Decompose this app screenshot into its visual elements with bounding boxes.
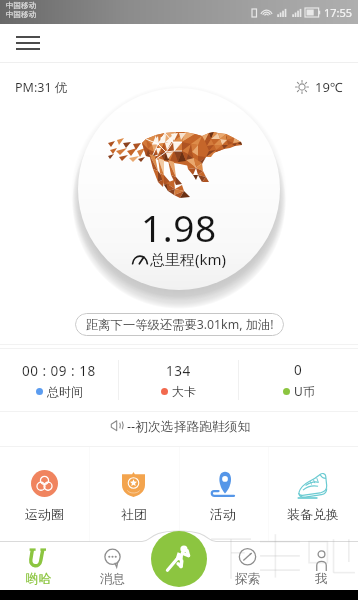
button[interactable]: 00 : 09 : 18 — [0, 349, 118, 411]
staticText: 社团 — [121, 506, 147, 522]
staticText: 1.98 — [141, 202, 217, 252]
staticText: 哟哈 — [26, 571, 51, 587]
button[interactable]: 装备兑换 — [268, 447, 358, 541]
button[interactable]: 134 — [119, 349, 238, 411]
staticText: 中国移动 — [6, 10, 36, 19]
staticText: 运动圈 — [25, 506, 64, 522]
button[interactable]: Start run — [151, 531, 207, 587]
staticText: 我 — [315, 571, 328, 587]
staticText: 00 : 09 : 18 — [22, 362, 96, 380]
button[interactable]: 探索 — [213, 542, 281, 590]
staticText: 总时间 — [47, 384, 83, 399]
button[interactable]: 距离下一等级还需要3.01km, 加油! — [75, 313, 284, 336]
button[interactable]: 消息 — [78, 542, 146, 590]
staticText: U币 — [294, 383, 315, 399]
button[interactable]: 社团 — [89, 447, 178, 541]
staticText: 大卡 — [172, 384, 196, 399]
staticText: 134 — [166, 362, 191, 380]
staticText: --初次选择路跑鞋须知 — [127, 417, 251, 434]
button[interactable]: Menu — [10, 29, 46, 57]
button[interactable]: 活动 — [178, 447, 268, 541]
staticText: 总里程(km) — [150, 249, 227, 269]
staticText: 距离下一等级还需要3.01km, 加油! — [86, 316, 274, 333]
staticText: 19℃ — [315, 78, 343, 96]
staticText: PM:31 优 — [15, 79, 68, 96]
button[interactable]: 哟哈 — [4, 542, 72, 590]
staticText: 17:55 — [324, 5, 353, 20]
staticText: 探索 — [235, 571, 260, 587]
button[interactable]: 运动圈 — [0, 447, 89, 541]
staticText: 消息 — [100, 571, 125, 587]
button[interactable]: 0 — [239, 349, 358, 411]
button[interactable]: 我 — [287, 542, 355, 590]
staticText: 活动 — [210, 506, 236, 522]
staticText: 中国移动 — [6, 1, 36, 10]
staticText: 装备兑换 — [287, 506, 339, 522]
button[interactable]: --初次选择路跑鞋须知 — [0, 408, 358, 442]
staticText: 0 — [294, 361, 303, 379]
